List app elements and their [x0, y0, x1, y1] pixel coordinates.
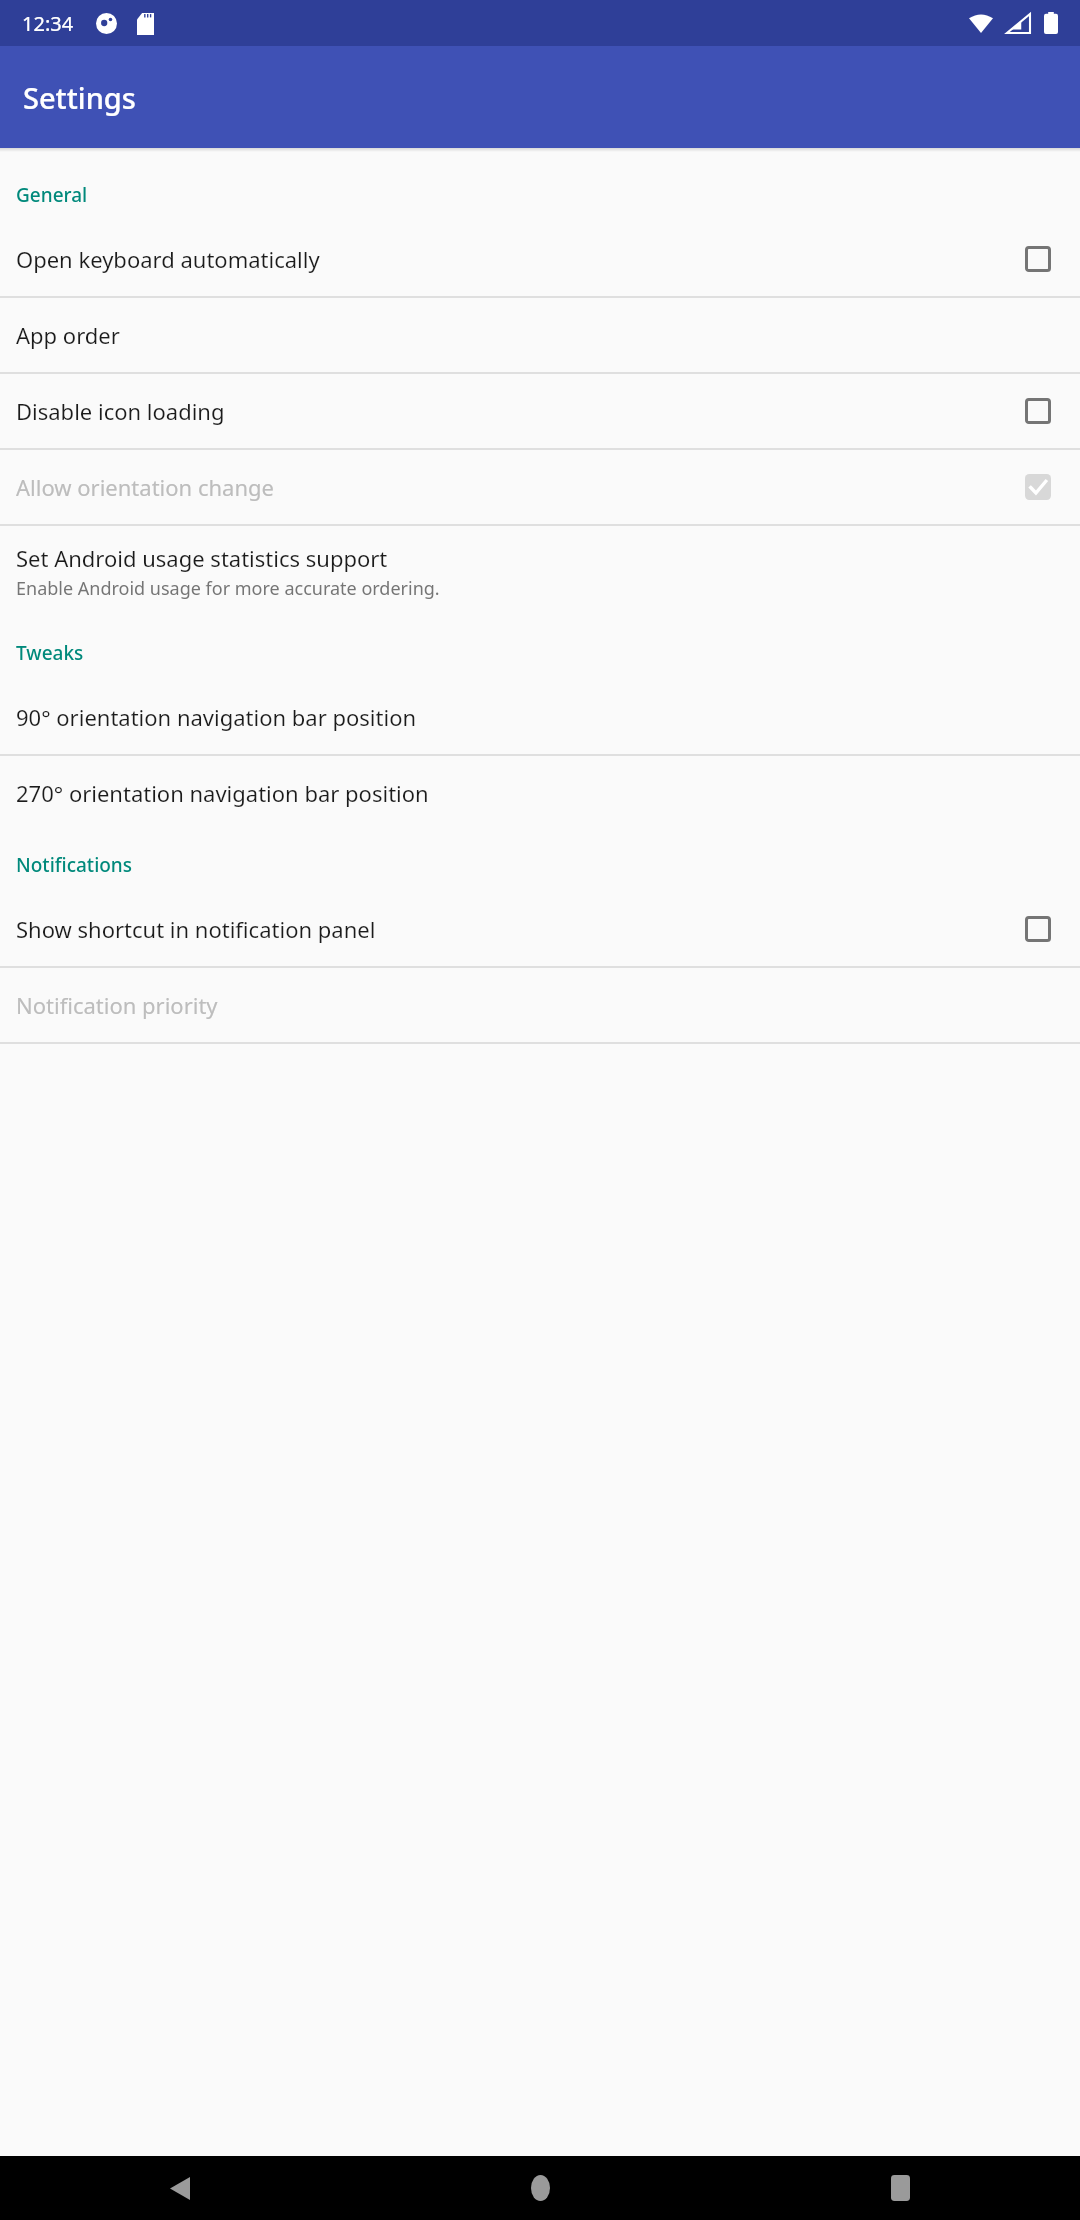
button[interactable]: Allow orientation change	[0, 450, 1080, 524]
staticText: Settings	[23, 78, 136, 117]
button[interactable]: Notification priority	[0, 968, 1080, 1042]
button[interactable]: Recent apps	[720, 2156, 1080, 2220]
staticText: Show shortcut in notification panel	[16, 914, 376, 944]
button[interactable]: 90° orientation navigation bar position	[0, 680, 1080, 754]
staticText: Disable icon loading	[16, 396, 225, 426]
staticText: 270° orientation navigation bar position	[16, 778, 429, 808]
staticText: Tweaks	[16, 640, 84, 666]
button[interactable]: 270° orientation navigation bar position	[0, 756, 1080, 830]
staticText: Enable Android usage for more accurate o…	[16, 576, 440, 601]
button[interactable]: Back	[0, 2156, 360, 2220]
staticText: 12:34	[22, 10, 74, 37]
button[interactable]: App order	[0, 298, 1080, 372]
staticText: Open keyboard automatically	[16, 244, 320, 274]
button[interactable]: Show shortcut in notification panel	[0, 892, 1080, 966]
button[interactable]: Home	[360, 2156, 720, 2220]
other: Toggle setting	[1018, 467, 1058, 507]
staticText: Notifications	[16, 852, 133, 878]
button[interactable]: Open keyboard automatically	[0, 222, 1080, 296]
button[interactable]: Toggle setting	[1018, 239, 1058, 279]
staticText: Set Android usage statistics support	[16, 543, 388, 573]
staticText: App order	[16, 320, 120, 350]
staticText: Notification priority	[16, 990, 218, 1020]
staticText: General	[16, 182, 88, 208]
button[interactable]: Toggle setting	[1018, 391, 1058, 431]
button[interactable]: Set Android usage statistics support	[0, 526, 1080, 618]
staticText: 90° orientation navigation bar position	[16, 702, 417, 732]
button[interactable]: Disable icon loading	[0, 374, 1080, 448]
staticText: Allow orientation change	[16, 472, 274, 502]
button[interactable]: Toggle setting	[1018, 909, 1058, 949]
